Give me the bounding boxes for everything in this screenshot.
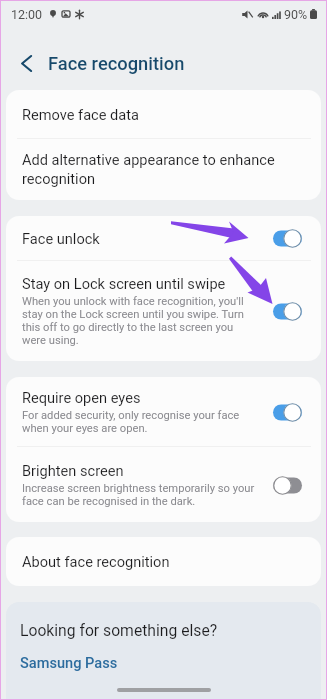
button[interactable]: Stay on Lock screen until swipe bbox=[6, 261, 321, 361]
staticText: Face recognition bbox=[48, 53, 185, 74]
staticText: Looking for something else? bbox=[20, 621, 218, 639]
button[interactable]: Face unlock bbox=[6, 216, 321, 260]
button[interactable]: Brighten screen bbox=[6, 447, 321, 522]
staticText: Stay on Lock screen until swipe bbox=[22, 275, 270, 292]
staticText: Face unlock bbox=[22, 230, 270, 247]
button[interactable]: Navigate up bbox=[12, 49, 40, 77]
button[interactable]: Require open eyes bbox=[6, 377, 321, 446]
button[interactable]: Switch on bbox=[270, 225, 305, 251]
staticText: About face recognition bbox=[22, 553, 272, 570]
staticText: Increase screen brightness temporarily s… bbox=[22, 482, 256, 508]
staticText: For added security, only recognise your … bbox=[22, 409, 256, 435]
staticText: Add alternative appearance to enhance re… bbox=[22, 151, 278, 188]
button[interactable]: Switch off bbox=[270, 472, 305, 498]
button[interactable]: Switch on bbox=[270, 298, 305, 324]
button[interactable]: Add alternative appearance to enhance re… bbox=[6, 139, 321, 200]
staticText: When you unlock with face recognition, y… bbox=[22, 295, 256, 347]
staticText: Remove face data bbox=[22, 106, 272, 123]
staticText: Brighten screen bbox=[22, 462, 270, 479]
staticText: Samsung Pass bbox=[20, 654, 118, 671]
button[interactable]: Switch on bbox=[270, 399, 305, 425]
staticText: 90% bbox=[284, 7, 308, 22]
staticText: Require open eyes bbox=[22, 389, 270, 406]
button[interactable]: Samsung Pass bbox=[20, 654, 118, 671]
button[interactable]: Remove face data bbox=[6, 90, 321, 138]
button[interactable]: About face recognition bbox=[6, 537, 321, 586]
staticText: 12:00 bbox=[11, 7, 43, 22]
